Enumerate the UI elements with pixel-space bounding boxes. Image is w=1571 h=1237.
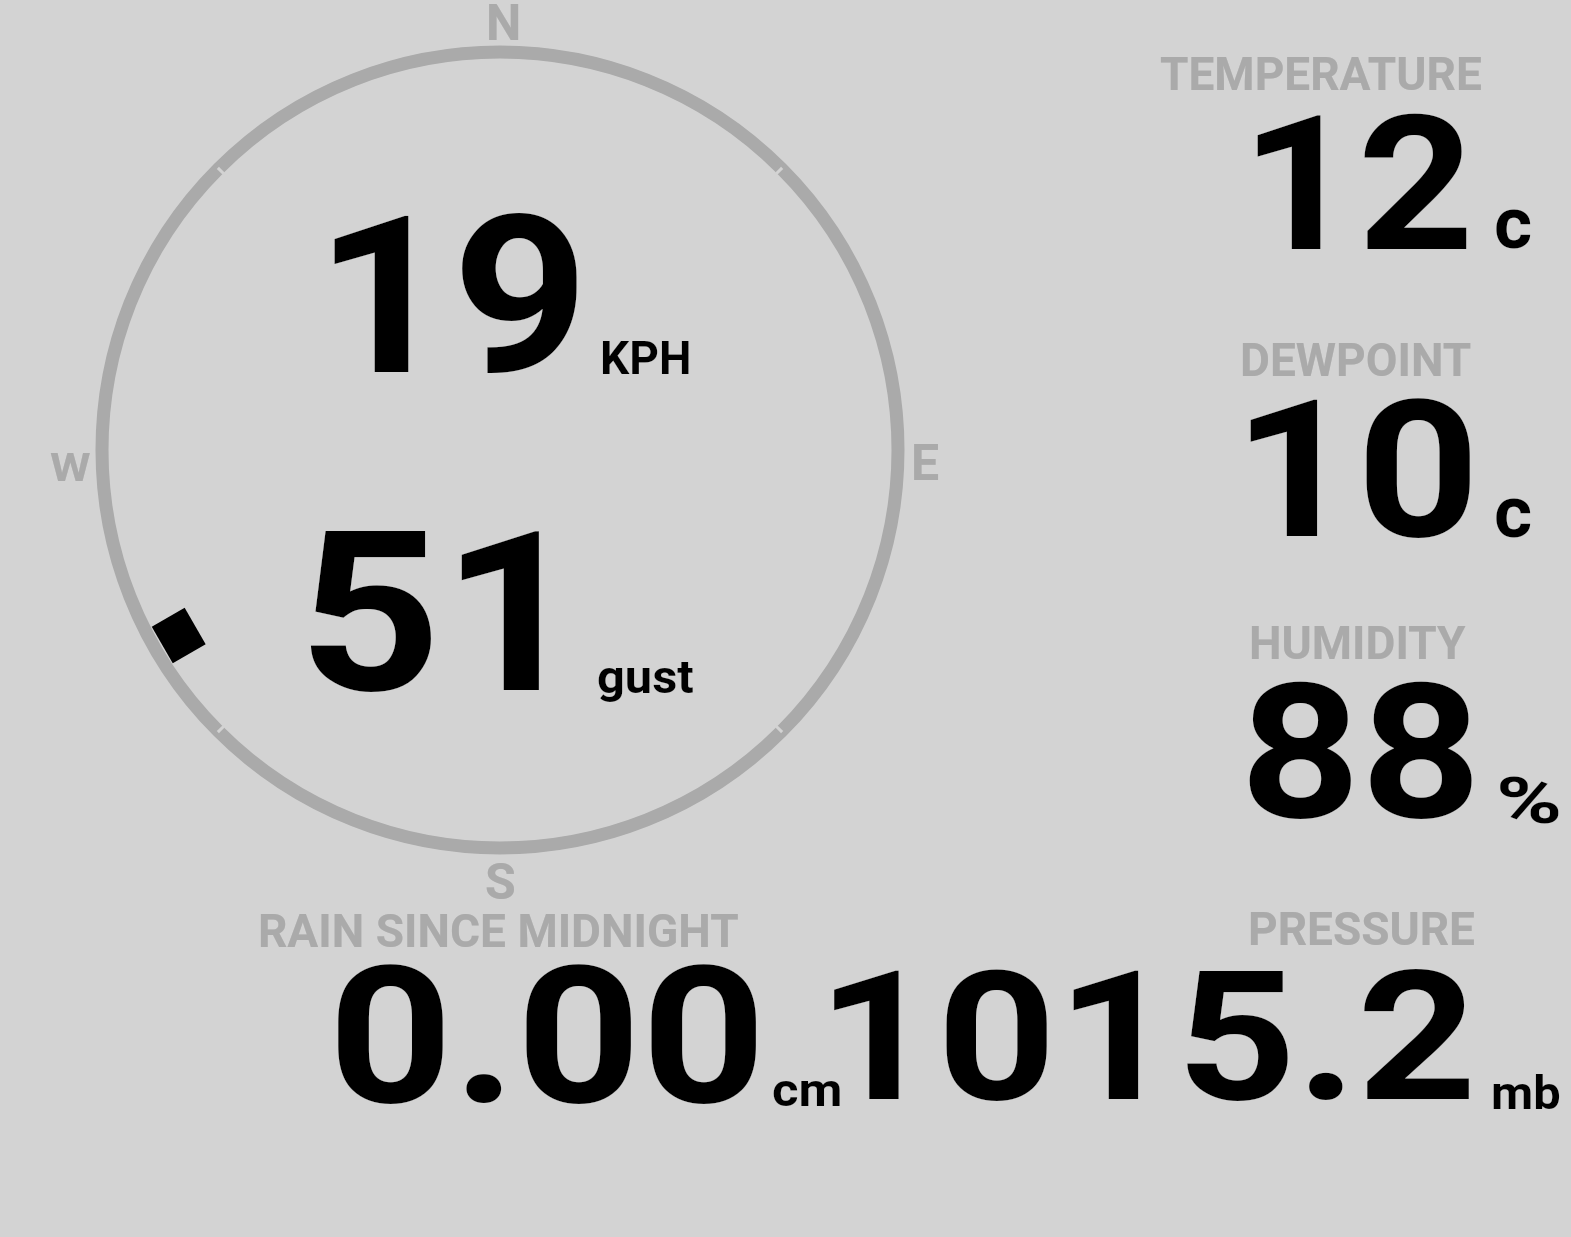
button[interactable]: Wind direction dial: [90, 40, 910, 860]
staticText: N: [486, 0, 522, 53]
staticText: W: [50, 446, 91, 491]
staticText: 1015.2: [817, 932, 1477, 1143]
button[interactable]: Wind speed 19 KPH: [300, 190, 700, 390]
staticText: KPH: [600, 331, 692, 385]
staticText: c: [1494, 180, 1533, 266]
staticText: cm: [772, 1062, 843, 1117]
staticText: 12: [1241, 75, 1474, 295]
button[interactable]: Wind gust 51: [295, 510, 705, 710]
staticText: TEMPERATURE: [1160, 47, 1482, 101]
staticText: gust: [597, 650, 694, 704]
staticText: mb: [1491, 1066, 1561, 1120]
button[interactable]: Pressure 1015.2 mb: [860, 900, 1560, 1115]
staticText: PRESSURE: [1248, 902, 1475, 956]
staticText: %: [1496, 764, 1563, 839]
staticText: E: [911, 434, 940, 493]
staticText: 88: [1240, 643, 1482, 863]
staticText: DEWPOINT: [1240, 333, 1472, 387]
staticText: 0.00: [328, 925, 767, 1149]
staticText: 51: [298, 483, 585, 744]
button[interactable]: Rain since midnight 0.00 cm: [250, 900, 850, 1115]
staticText: 19: [315, 169, 590, 426]
button[interactable]: Humidity 88 percent: [1150, 612, 1560, 837]
staticText: RAIN SINCE MIDNIGHT: [258, 904, 739, 958]
staticText: 10: [1233, 358, 1480, 583]
staticText: c: [1494, 469, 1533, 555]
button[interactable]: Dewpoint 10 degrees C: [1150, 330, 1560, 555]
staticText: S: [485, 853, 516, 912]
button[interactable]: Temperature 12 degrees C: [1150, 45, 1560, 270]
staticText: HUMIDITY: [1249, 616, 1466, 670]
